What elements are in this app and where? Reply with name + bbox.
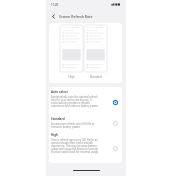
button[interactable]: Back [48, 11, 59, 22]
staticText: A maximum refresh rate of 60 Hz to conse… [51, 122, 101, 128]
staticText: Standard [90, 75, 102, 79]
button[interactable]: Auto select [111, 98, 120, 107]
staticText: Uses a refresh rate up to 120 Hz for an … [51, 138, 101, 153]
staticText: 11:20 [51, 3, 59, 7]
staticText: Screen Refresh Rate [59, 14, 93, 19]
button[interactable]: High [111, 144, 120, 153]
staticText: High [68, 75, 75, 79]
button[interactable]: Standard [111, 119, 120, 128]
staticText: Standard [51, 117, 65, 121]
staticText: Automatically uses the optimal refresh r… [51, 95, 101, 107]
staticText: High [51, 133, 59, 137]
staticText: Auto select [51, 90, 68, 94]
